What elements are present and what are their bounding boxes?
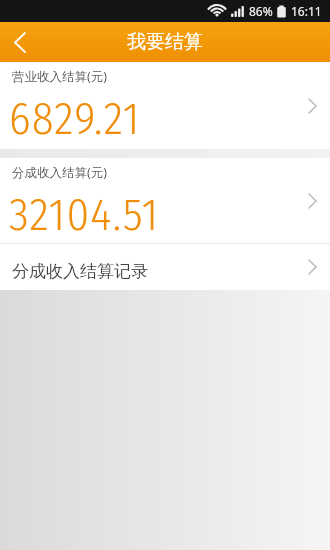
staticText: 32104.51 [9, 188, 160, 242]
staticText: 16:11 [291, 3, 322, 19]
staticText: 6829.21 [9, 92, 141, 146]
button[interactable]: 营业收入结算(元) [0, 62, 330, 149]
button[interactable]: 分成收入结算记录 [0, 244, 330, 290]
staticText: 营业收入结算(元) [12, 68, 108, 85]
button[interactable] [0, 22, 40, 62]
staticText: 我要结算 [127, 30, 203, 54]
button[interactable]: 分成收入结算(元) [0, 158, 330, 243]
staticText: 86% [249, 3, 273, 19]
staticText: 分成收入结算(元) [12, 164, 108, 181]
staticText: 分成收入结算记录 [12, 261, 148, 282]
